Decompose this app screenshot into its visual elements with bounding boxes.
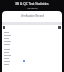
staticText: Verification Record — [21, 14, 44, 18]
staticText: Mi & QC Test Statistics — [15, 2, 49, 6]
staticText: 88 Edition — [27, 7, 38, 10]
